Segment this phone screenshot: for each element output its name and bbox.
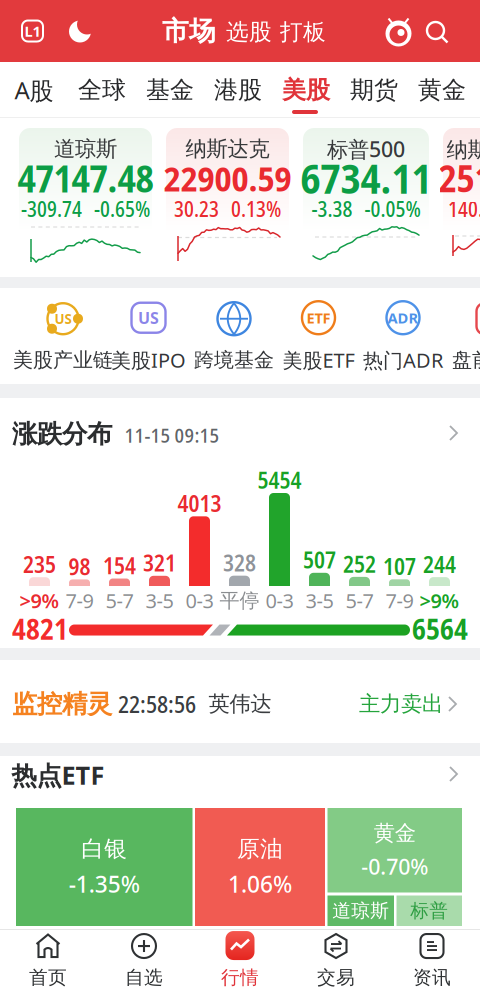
staticText: >9% bbox=[419, 587, 459, 614]
button[interactable]: 期货 bbox=[340, 62, 408, 118]
button[interactable]: 涨跌分布 bbox=[0, 398, 480, 460]
staticText: ETF bbox=[306, 308, 330, 327]
staticText: 328 bbox=[223, 547, 256, 578]
staticText: 热点ETF bbox=[11, 758, 104, 792]
button[interactable]: 全球 bbox=[68, 62, 136, 118]
button[interactable]: 搜索 bbox=[425, 20, 449, 44]
button[interactable]: 标普 bbox=[396, 895, 462, 926]
button[interactable]: 行情 bbox=[192, 929, 288, 991]
staticText: 英伟达 bbox=[208, 691, 271, 717]
staticText: 47147.48 bbox=[17, 153, 153, 203]
staticText: -0.65% bbox=[94, 195, 150, 223]
button[interactable]: 道琼斯 bbox=[19, 128, 152, 272]
button[interactable]: 打板 bbox=[280, 18, 326, 46]
button[interactable]: ADR bbox=[363, 299, 443, 373]
staticText: 154 bbox=[103, 550, 136, 581]
staticText: 22:58:56 bbox=[118, 688, 196, 720]
button[interactable]: 标普500 bbox=[303, 128, 429, 272]
staticText: 美股IPO bbox=[111, 347, 186, 373]
staticText: -1.35% bbox=[69, 869, 140, 899]
staticText: 5-7 bbox=[345, 587, 373, 614]
staticText: 打板 bbox=[280, 18, 326, 46]
staticText: 7-9 bbox=[65, 587, 93, 614]
staticText: 22900.59 bbox=[163, 154, 291, 202]
button[interactable]: 市场 bbox=[162, 15, 216, 47]
staticText: 黄金 bbox=[418, 75, 466, 105]
button[interactable]: 纳斯达克 bbox=[166, 128, 289, 272]
staticText: 黄金 bbox=[374, 820, 416, 846]
staticText: 0-3 bbox=[265, 587, 293, 614]
button[interactable]: 跨境基金 bbox=[194, 300, 274, 372]
staticText: ADR bbox=[387, 308, 418, 327]
staticText: 盘前必读 bbox=[452, 348, 480, 372]
button[interactable]: 原油 bbox=[195, 808, 325, 926]
staticText: 白银 bbox=[81, 835, 127, 863]
button[interactable]: 黄金 bbox=[327, 808, 462, 892]
staticText: 道琼斯 bbox=[332, 899, 389, 922]
staticText: 首页 bbox=[29, 966, 67, 989]
button[interactable]: 美股 bbox=[272, 62, 340, 118]
staticText: >9% bbox=[19, 587, 59, 614]
staticText: 涨跌分布 bbox=[12, 418, 112, 449]
staticText: 美股产业链 bbox=[13, 348, 113, 372]
button[interactable]: 资讯 bbox=[384, 930, 480, 992]
staticText: US bbox=[54, 310, 71, 328]
button[interactable]: 选股 bbox=[226, 18, 272, 46]
staticText: 3-5 bbox=[145, 587, 173, 614]
staticText: 507 bbox=[303, 544, 336, 575]
staticText: 4821 bbox=[12, 610, 68, 648]
button[interactable]: 道琼斯 bbox=[327, 895, 394, 926]
button[interactable]: 纳斯达克100 bbox=[443, 128, 480, 272]
staticText: 25130.40 bbox=[438, 153, 480, 203]
staticText: -309.74 bbox=[21, 195, 82, 223]
staticText: 标普 bbox=[410, 899, 448, 922]
staticText: 美股 bbox=[282, 75, 330, 105]
staticText: 期货 bbox=[350, 75, 398, 105]
button[interactable]: 活动 bbox=[384, 17, 412, 47]
button[interactable]: 监控精灵 bbox=[0, 660, 480, 743]
button[interactable]: 自选 bbox=[96, 930, 192, 992]
staticText: 平停 bbox=[219, 588, 259, 613]
staticText: 港股 bbox=[214, 75, 262, 105]
staticText: US bbox=[138, 307, 159, 328]
staticText: 140.66 bbox=[448, 195, 480, 223]
staticText: 原油 bbox=[237, 835, 283, 863]
button[interactable]: 夜间模式 bbox=[68, 19, 92, 43]
staticText: 1.06% bbox=[228, 869, 292, 899]
staticText: 107 bbox=[383, 551, 416, 582]
staticText: A股 bbox=[14, 74, 53, 106]
staticText: 0.13% bbox=[231, 195, 281, 223]
staticText: 基金 bbox=[146, 75, 194, 105]
staticText: 5-7 bbox=[105, 587, 133, 614]
staticText: 30.23 bbox=[174, 195, 219, 223]
button[interactable]: US bbox=[111, 299, 186, 373]
button[interactable]: 盘前必读 bbox=[452, 300, 480, 372]
staticText: 全球 bbox=[78, 75, 126, 105]
staticText: 美股ETF bbox=[282, 347, 354, 373]
button[interactable]: 黄金 bbox=[408, 62, 476, 118]
staticText: 6734.11 bbox=[300, 150, 431, 206]
button[interactable]: ETF bbox=[282, 299, 354, 373]
staticText: 6564 bbox=[412, 610, 468, 648]
button[interactable]: US bbox=[13, 300, 113, 372]
staticText: 交易 bbox=[317, 966, 355, 989]
staticText: 7-9 bbox=[385, 587, 413, 614]
button[interactable]: 白银 bbox=[16, 808, 192, 926]
button[interactable]: 港股 bbox=[204, 62, 272, 118]
staticText: 252 bbox=[343, 548, 376, 579]
staticText: 道琼斯 bbox=[54, 136, 117, 162]
staticText: 4013 bbox=[177, 488, 221, 519]
button[interactable]: 首页 bbox=[0, 930, 96, 992]
button[interactable]: A股 bbox=[0, 62, 68, 118]
staticText: 纳斯达克 bbox=[185, 136, 269, 162]
button[interactable]: Level-1 行情 bbox=[20, 18, 45, 43]
staticText: 跨境基金 bbox=[194, 348, 274, 372]
button[interactable]: 交易 bbox=[288, 930, 384, 992]
staticText: 自选 bbox=[125, 966, 163, 989]
staticText: 选股 bbox=[226, 18, 272, 46]
staticText: 监控精灵 bbox=[12, 688, 112, 719]
button[interactable]: 热点ETF bbox=[0, 756, 480, 798]
button[interactable]: 基金 bbox=[136, 62, 204, 118]
staticText: 98 bbox=[68, 551, 90, 582]
staticText: 标普500 bbox=[327, 135, 405, 163]
